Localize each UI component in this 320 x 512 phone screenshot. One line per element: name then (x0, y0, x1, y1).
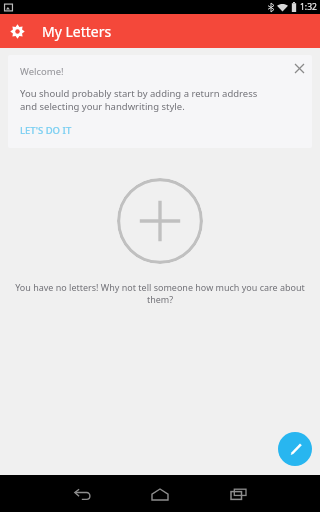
staticText: 1:32 (300, 1, 317, 13)
staticText: You should probably start by adding a re… (20, 87, 272, 113)
button[interactable]: Settings (0, 14, 34, 48)
button[interactable]: Dismiss (286, 55, 312, 81)
button[interactable]: Compose letter (278, 432, 312, 466)
button[interactable]: Add letter (117, 178, 203, 264)
staticText: My Letters (42, 22, 112, 41)
button[interactable]: Home (143, 477, 177, 511)
button[interactable]: LET'S DO IT (20, 124, 72, 137)
staticText: Welcome! (20, 65, 64, 78)
staticText: LET'S DO IT (20, 124, 72, 137)
staticText: You have no letters! Why not tell someon… (14, 281, 306, 305)
button[interactable]: Back (65, 477, 99, 511)
button[interactable]: Welcome! (8, 55, 312, 148)
button[interactable]: Recent apps (221, 477, 255, 511)
